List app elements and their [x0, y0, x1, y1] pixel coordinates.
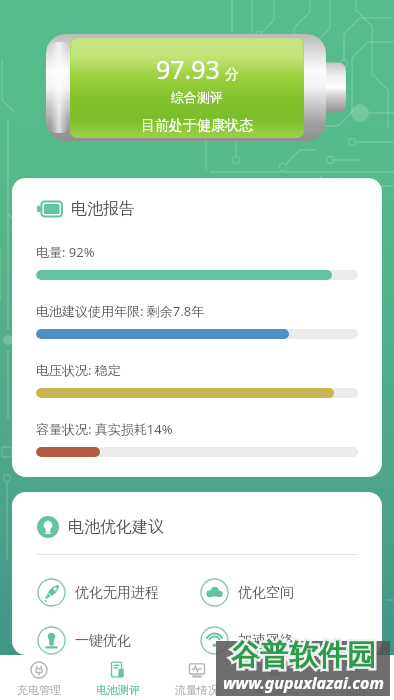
staticText: 我的	[344, 683, 366, 697]
staticText: 省电模式	[254, 683, 298, 697]
button[interactable]: 我的	[315, 655, 394, 700]
staticText: 谷	[231, 637, 260, 674]
button[interactable]: 加速网络	[200, 626, 358, 655]
staticText: 电量: 92%	[36, 243, 95, 261]
staticText: 电池建议使用年限: 剩余7.8年	[36, 302, 205, 320]
staticText: 电池优化建议	[68, 517, 164, 537]
button[interactable]: 电池测评	[78, 655, 157, 700]
staticText: 电池测评	[96, 683, 140, 697]
staticText: 软	[289, 637, 318, 674]
button[interactable]: 一键优化	[37, 626, 200, 655]
staticText: 软	[289, 637, 318, 674]
staticText: 优化空间	[238, 584, 294, 602]
staticText: 综合测评	[171, 89, 223, 105]
staticText: 件	[318, 637, 347, 674]
staticText: 电压状况: 稳定	[36, 361, 121, 379]
staticText: 普	[260, 637, 289, 674]
button[interactable]: 省电模式	[236, 655, 315, 700]
staticText: 电池报告	[71, 199, 135, 219]
staticText: 容量状况: 真实损耗14%	[36, 420, 173, 438]
staticText: 97.93	[156, 52, 220, 86]
button[interactable]: 充电管理	[0, 655, 78, 700]
button[interactable]: 优化无用进程	[37, 578, 200, 607]
staticText: 园	[347, 637, 376, 674]
staticText: 件	[318, 637, 347, 674]
staticText: 加速网络	[238, 632, 294, 650]
staticText: www.gupuxlazai.com	[223, 672, 384, 694]
staticText: 目前处于健康状态	[141, 117, 253, 135]
staticText: 普	[260, 637, 289, 674]
staticText: 园	[347, 637, 376, 674]
button[interactable]: 流量情况	[157, 655, 236, 700]
staticText: 优化无用进程	[75, 584, 159, 602]
button[interactable]: 优化空间	[200, 578, 358, 607]
staticText: 谷	[231, 637, 260, 674]
staticText: 一键优化	[75, 632, 131, 650]
staticText: 流量情况	[175, 683, 219, 697]
staticText: 充电管理	[17, 683, 61, 697]
staticText: 分	[225, 66, 239, 84]
